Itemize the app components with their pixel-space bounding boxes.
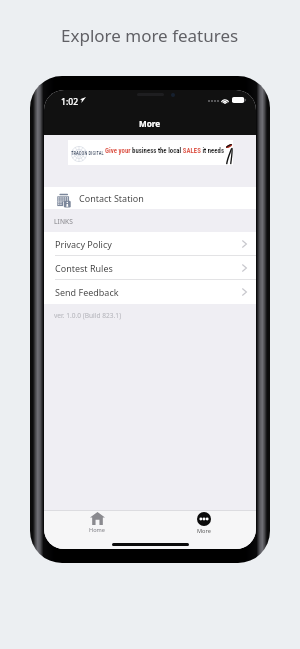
staticText: Explore more features — [61, 24, 239, 47]
staticText: More — [197, 527, 211, 535]
staticText: 1:02 — [61, 96, 79, 108]
staticText: More — [139, 118, 161, 129]
staticText: TRACON DIGITAL — [71, 151, 104, 156]
button[interactable]: Send Feedback — [44, 280, 256, 304]
staticText: Home — [89, 526, 105, 534]
button[interactable]: Contact Station — [44, 187, 256, 209]
button[interactable]: TRACON DIGITAL — [44, 140, 256, 165]
button[interactable]: Contest Rules — [44, 256, 256, 280]
staticText: Contest Rules — [55, 262, 113, 274]
staticText: Send Feedback — [55, 286, 119, 298]
other: Home — [90, 512, 105, 525]
staticText: Give your business the local SALES it ne… — [105, 147, 225, 155]
staticText: LINKS — [54, 217, 73, 226]
button[interactable]: Privacy Policy — [44, 232, 256, 256]
button[interactable]: More — [183, 511, 225, 537]
staticText: Contact Station — [79, 192, 144, 204]
button[interactable]: Home — [76, 511, 118, 537]
other: More — [197, 512, 211, 526]
staticText: Privacy Policy — [55, 238, 112, 250]
staticText: ver. 1.0.0 (Build 823.1) — [54, 311, 122, 320]
